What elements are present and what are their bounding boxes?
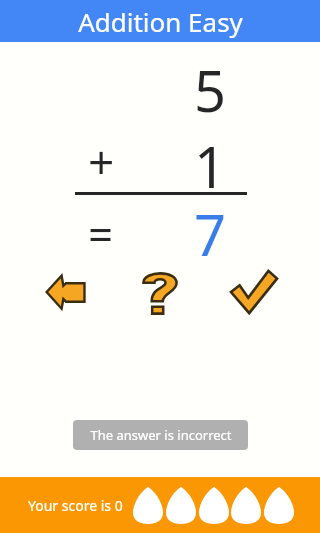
button[interactable]: Confirm answer xyxy=(228,266,280,318)
button[interactable]: Hint xyxy=(134,266,186,318)
staticText: The answer is incorrect xyxy=(90,426,232,444)
staticText: Addition Easy xyxy=(78,4,243,39)
staticText: 1 xyxy=(194,128,227,190)
staticText: + xyxy=(88,130,115,186)
button[interactable]: Back xyxy=(40,266,92,318)
staticText: Your score is 0 xyxy=(28,496,123,515)
staticText: 5 xyxy=(194,52,227,114)
staticText: = xyxy=(88,204,114,256)
staticText: 7 xyxy=(194,196,227,258)
